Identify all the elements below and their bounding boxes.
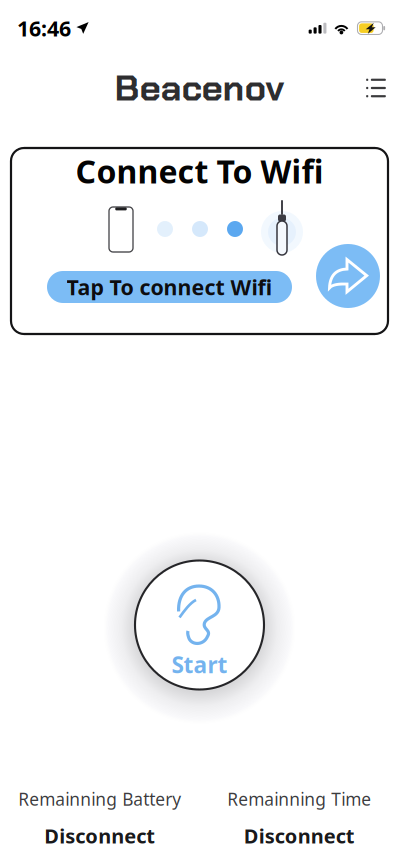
staticText: 16:46 <box>17 14 71 42</box>
staticText: Tap To connect Wifi <box>66 273 272 301</box>
staticText: Disconnect <box>244 822 355 849</box>
button[interactable]: Next <box>316 244 380 308</box>
button[interactable]: Start <box>103 529 295 721</box>
staticText: Connect To Wifi <box>75 150 323 192</box>
staticText: Disconnect <box>44 822 155 849</box>
button[interactable]: Menu <box>360 73 392 103</box>
staticText: Remainning Battery <box>18 787 181 810</box>
staticText: Remainning Time <box>227 787 371 810</box>
staticText: Start <box>171 649 227 679</box>
button[interactable]: Tap To connect Wifi <box>47 271 292 303</box>
staticText: Beacenov <box>114 64 284 112</box>
